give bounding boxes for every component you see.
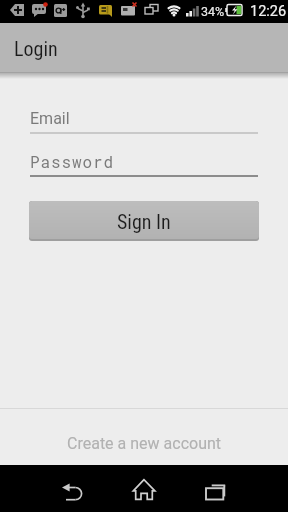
button[interactable] [116, 465, 172, 512]
button[interactable] [187, 465, 243, 512]
staticText: Password [30, 151, 115, 172]
button[interactable]: Password [30, 147, 258, 177]
button[interactable]: Create a new account [0, 409, 288, 465]
staticText: 12:26 [250, 3, 287, 20]
button[interactable] [45, 465, 101, 512]
staticText: Email [30, 109, 70, 128]
staticText: Sign In [117, 210, 171, 233]
staticText: 34% [201, 4, 225, 19]
button[interactable]: Email [30, 104, 258, 134]
staticText: Create a new account [67, 434, 222, 453]
staticText: Login [14, 37, 58, 60]
button[interactable]: Sign In [29, 201, 259, 241]
